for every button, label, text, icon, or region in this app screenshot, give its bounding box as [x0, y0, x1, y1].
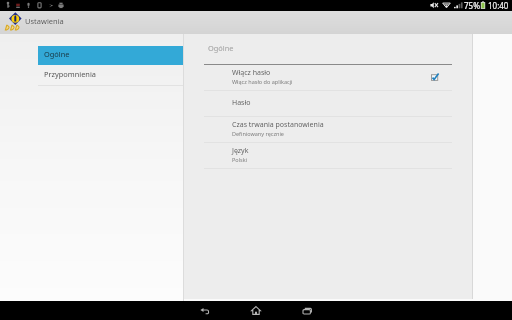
staticText: Ustawienia	[25, 16, 64, 26]
staticText: 10:40	[488, 0, 509, 11]
button[interactable]: Ogólne	[38, 46, 183, 65]
button[interactable]: Czas trwania postanowienia	[184, 117, 472, 142]
staticText: Hasło	[232, 98, 251, 108]
staticText: Polski	[232, 156, 248, 163]
button[interactable]: Back	[180, 301, 231, 320]
button[interactable]: Recent apps	[282, 301, 333, 320]
button[interactable]: Włącz hasło	[184, 65, 472, 90]
staticText: 75%	[464, 0, 480, 11]
staticText: Czas trwania postanowienia	[232, 120, 324, 130]
button[interactable]: Navigate up	[0, 11, 90, 34]
staticText: Definiowany ręcznie	[232, 130, 284, 137]
staticText: Włącz hasło	[232, 68, 271, 78]
button[interactable]: Język	[184, 143, 472, 168]
staticText: Ogólne	[208, 43, 234, 53]
staticText: Przypomnienia	[44, 69, 96, 79]
staticText: Ogólne	[44, 49, 70, 59]
button[interactable]: Przypomnienia	[38, 65, 183, 85]
staticText: Język	[232, 146, 249, 156]
button[interactable]: Home	[231, 301, 282, 320]
button[interactable]: Hasło	[184, 91, 472, 116]
staticText: Włącz hasło do aplikacji	[232, 78, 293, 85]
